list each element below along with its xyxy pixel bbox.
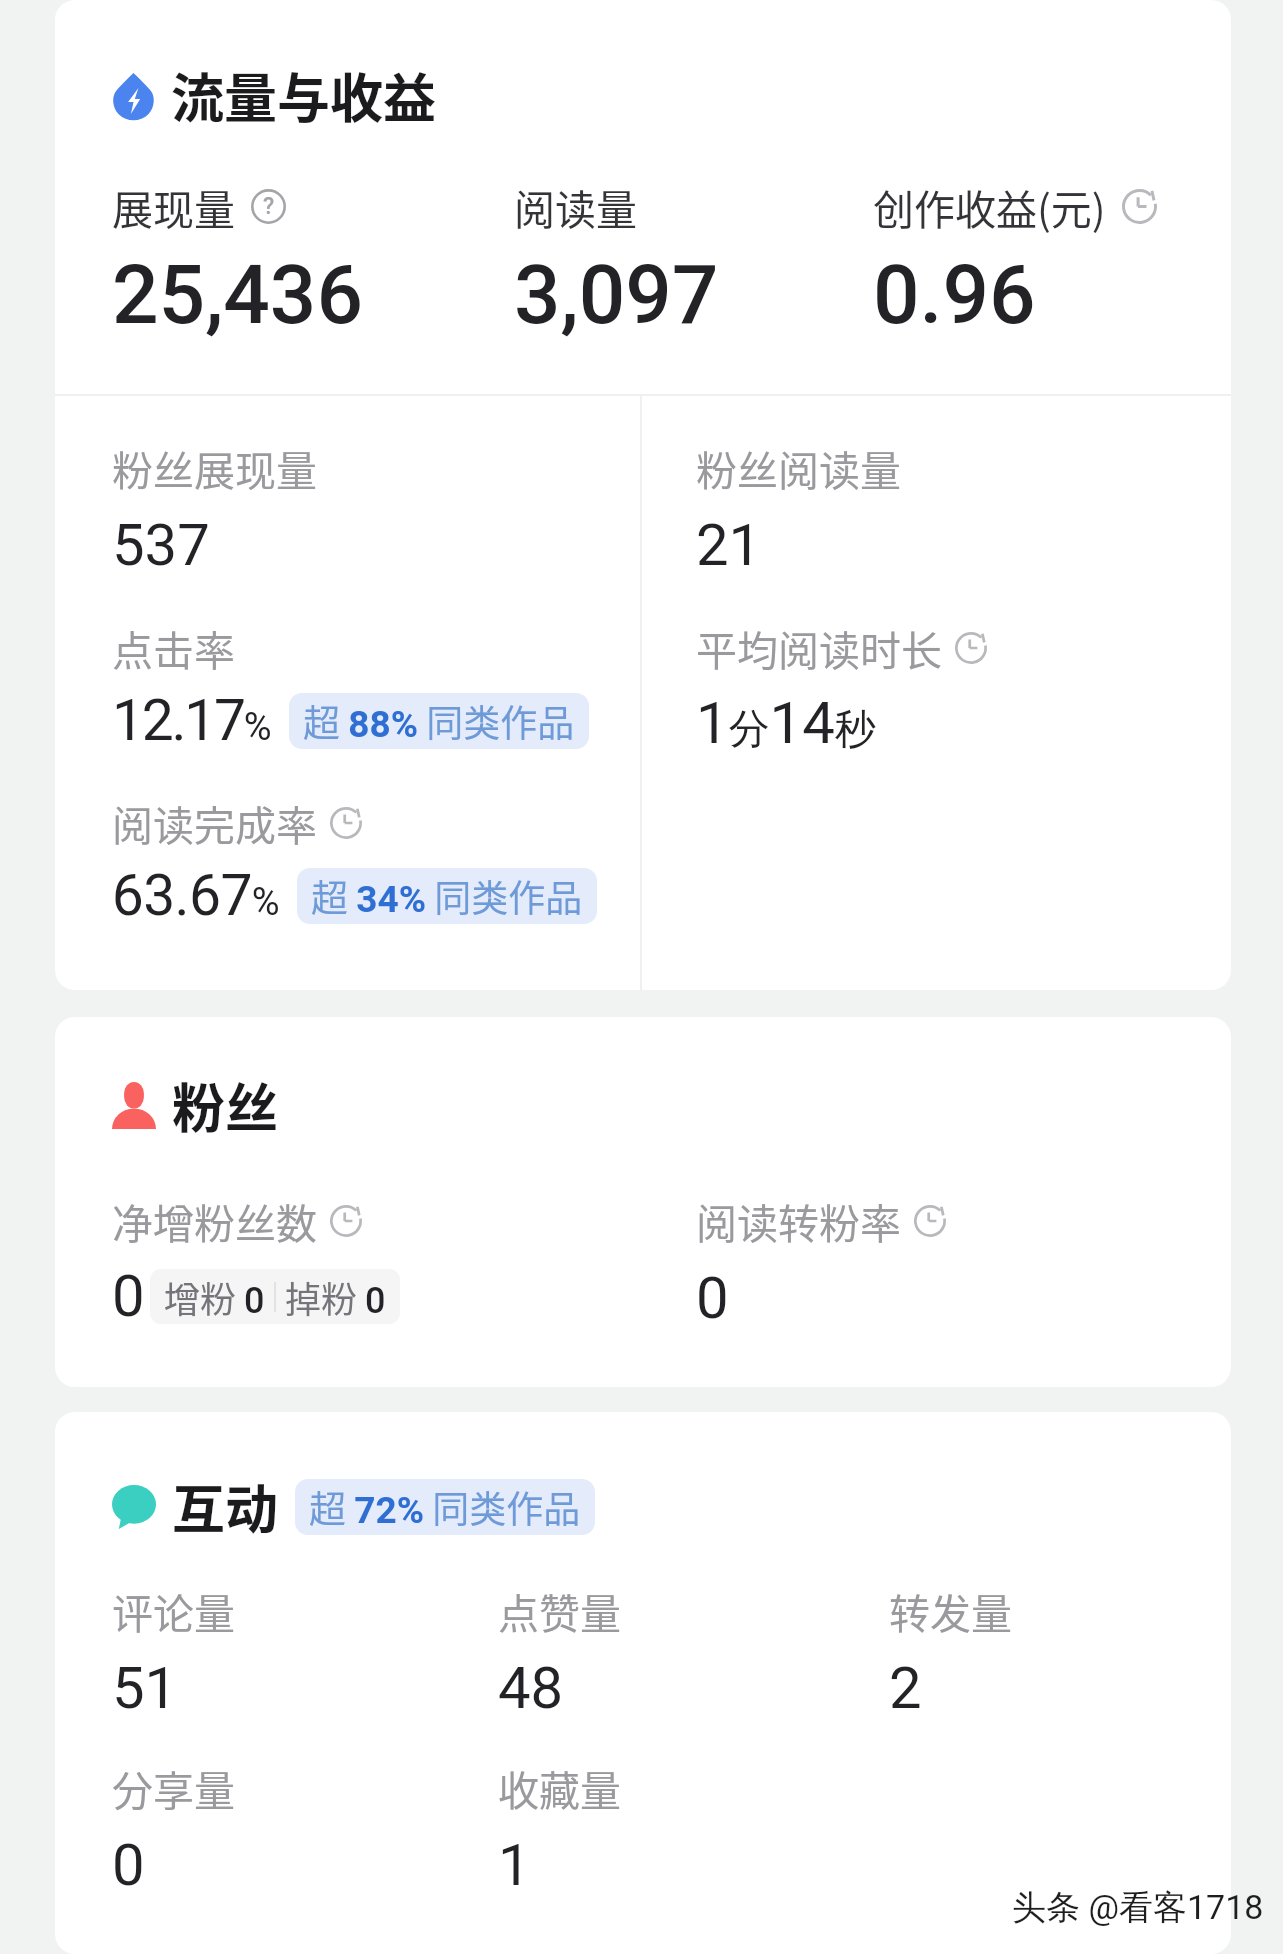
staticText: 12.17% (112, 687, 272, 754)
staticText: 流量与收益 (171, 57, 436, 134)
staticText: 粉丝阅读量 (696, 438, 901, 497)
button[interactable]: 平均阅读时长 (696, 618, 987, 757)
button[interactable]: 净增粉丝数 (112, 1191, 400, 1330)
staticText: 1分14秒 (696, 689, 876, 757)
other: Updated daily (330, 807, 362, 839)
button[interactable]: 阅读完成率 (112, 793, 597, 929)
button[interactable]: 超 34% 同类作品 (297, 868, 597, 924)
staticText: 头条 @看客1718 (1012, 1886, 1264, 1929)
staticText: 48 (498, 1654, 564, 1722)
button[interactable]: 分享量 (112, 1758, 235, 1899)
staticText: 25,436 (112, 247, 364, 343)
button[interactable]: 阅读量 (514, 177, 719, 343)
button[interactable]: 点赞量 (498, 1581, 621, 1722)
staticText: 3,097 (514, 247, 719, 343)
staticText: 阅读量 (514, 177, 637, 236)
staticText: 0 (112, 1262, 145, 1330)
staticText: 点赞量 (498, 1581, 621, 1640)
button[interactable]: 互动 (112, 1468, 595, 1545)
staticText: 展现量 (112, 177, 235, 236)
staticText: 0.96 (873, 247, 1036, 343)
staticText: 阅读转粉率 (696, 1191, 901, 1250)
staticText: 粉丝 (172, 1067, 278, 1144)
button[interactable]: 点击率 (112, 618, 589, 754)
staticText: 超 34% 同类作品 (311, 869, 583, 923)
staticText: 阅读完成率 (112, 793, 317, 852)
staticText: 掉粉 0 (285, 1271, 386, 1323)
staticText: 粉丝展现量 (112, 438, 317, 497)
button[interactable]: 超 72% 同类作品 (295, 1479, 595, 1535)
button[interactable]: 粉丝 (112, 1067, 278, 1144)
staticText: 增粉 0 (164, 1271, 265, 1323)
other: Updated daily (914, 1205, 946, 1237)
staticText: 63.67% (112, 862, 280, 929)
staticText: 分享量 (112, 1758, 235, 1817)
staticText: 转发量 (889, 1581, 1012, 1640)
button[interactable]: 收藏量 (498, 1758, 621, 1899)
other: Updated daily (955, 632, 987, 664)
other: Updated daily (1122, 189, 1157, 224)
staticText: 创作收益(元) (873, 177, 1106, 236)
staticText: 1 (498, 1831, 531, 1899)
staticText: 互动 (172, 1468, 278, 1545)
staticText: 评论量 (112, 1581, 235, 1640)
button[interactable]: 阅读转粉率 (696, 1191, 946, 1332)
staticText: 净增粉丝数 (112, 1191, 317, 1250)
staticText: 0 (112, 1831, 145, 1899)
button[interactable]: 创作收益(元) (873, 177, 1157, 343)
button[interactable]: 流量与收益 (112, 57, 436, 134)
staticText: 点击率 (112, 618, 235, 677)
staticText: 收藏量 (498, 1758, 621, 1817)
button[interactable]: 粉丝阅读量 (696, 438, 901, 579)
button[interactable]: 转发量 (889, 1581, 1012, 1722)
staticText: 21 (696, 511, 762, 579)
staticText: 超 88% 同类作品 (303, 694, 575, 748)
button[interactable]: 评论量 (112, 1581, 235, 1722)
staticText: ? (263, 193, 275, 220)
other: Updated daily (330, 1205, 362, 1237)
staticText: 超 72% 同类作品 (309, 1480, 581, 1534)
button[interactable]: Help (251, 189, 286, 224)
button[interactable]: 粉丝展现量 (112, 438, 317, 579)
staticText: 51 (112, 1654, 178, 1722)
staticText: 2 (889, 1654, 922, 1722)
button[interactable]: 超 88% 同类作品 (289, 693, 589, 749)
button[interactable]: 展现量 (112, 177, 364, 343)
staticText: 0 (696, 1264, 729, 1332)
staticText: 平均阅读时长 (696, 618, 942, 677)
button[interactable]: 增粉 0 (150, 1269, 400, 1324)
staticText: 537 (112, 511, 210, 579)
